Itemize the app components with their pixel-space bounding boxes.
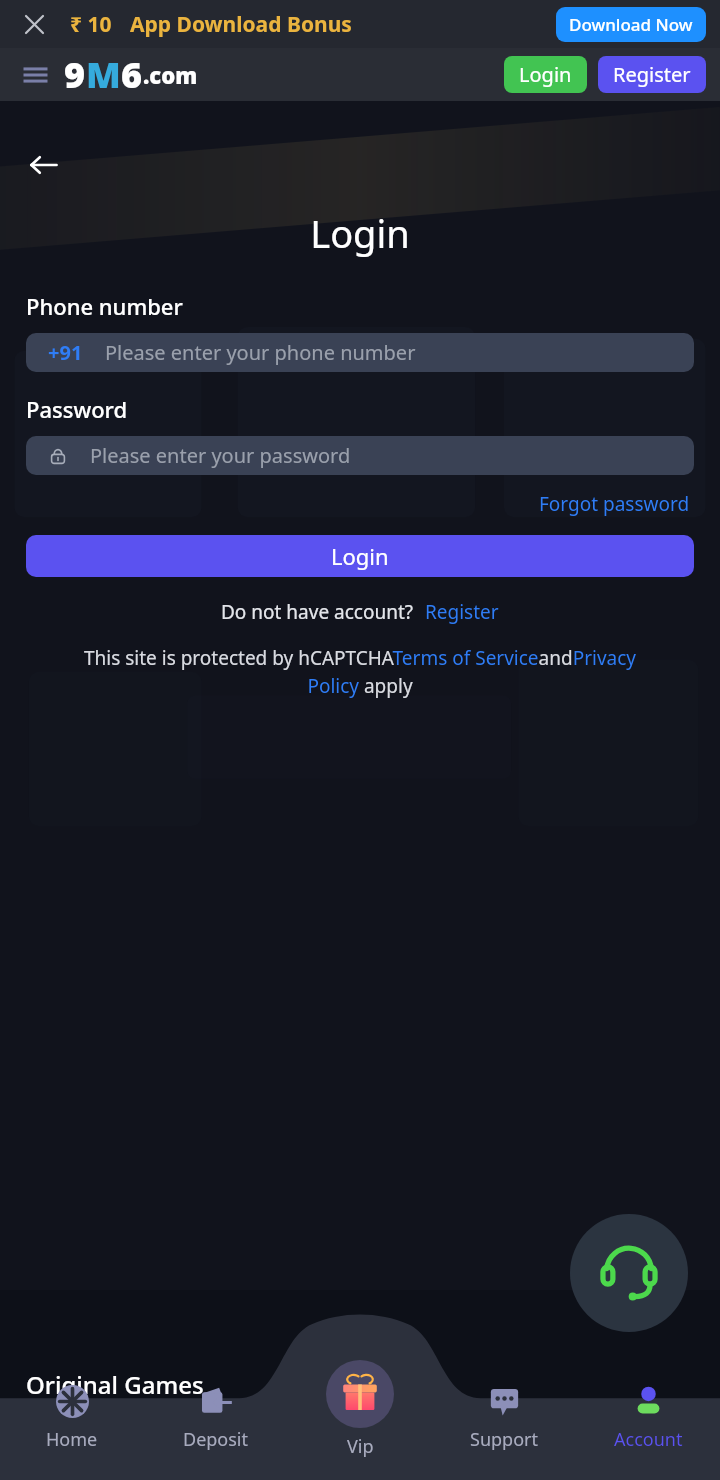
- staticText: About: [360, 1368, 430, 1401]
- staticText: Vip: [347, 1434, 374, 1459]
- staticText: Login: [331, 541, 389, 571]
- staticText: +91: [48, 339, 83, 366]
- staticText: Register: [425, 599, 499, 625]
- button[interactable]: Download Now: [556, 7, 706, 42]
- button[interactable]: Support chat: [570, 1214, 688, 1332]
- staticText: This site is protected by hCAPTCHATerms …: [56, 645, 664, 699]
- button[interactable]: Back: [18, 139, 70, 191]
- staticText: .com: [143, 60, 198, 90]
- button[interactable]: Login: [504, 56, 587, 93]
- staticText: Terms of Service: [360, 1423, 522, 1452]
- staticText: Deposit: [183, 1427, 249, 1452]
- button[interactable]: Register: [425, 599, 499, 625]
- button[interactable]: Home: [0, 1382, 144, 1480]
- staticText: 9: [64, 50, 86, 99]
- button[interactable]: Forgot password: [535, 487, 694, 521]
- staticText: Home: [46, 1427, 98, 1452]
- staticText: 6: [121, 50, 143, 99]
- button[interactable]: Close: [14, 4, 54, 44]
- staticText: M: [86, 50, 121, 99]
- button[interactable]: +91: [26, 333, 694, 372]
- staticText: Login: [519, 61, 572, 88]
- staticText: ₹ 10: [70, 10, 112, 39]
- button[interactable]: Account: [576, 1382, 720, 1480]
- staticText: Register: [613, 61, 691, 88]
- staticText: Support: [470, 1427, 538, 1452]
- staticText: App Download Bonus: [130, 10, 352, 39]
- staticText: Account: [614, 1427, 683, 1452]
- staticText: Phone number: [26, 291, 183, 321]
- staticText: Do not have account?: [221, 599, 414, 625]
- button[interactable]: Register: [598, 56, 706, 93]
- staticText: Login: [0, 207, 720, 259]
- button[interactable]: Please enter your password: [26, 436, 694, 475]
- button[interactable]: Vip: [288, 1382, 432, 1475]
- staticText: In-House: [26, 1423, 117, 1452]
- staticText: Original Games: [26, 1368, 204, 1401]
- button[interactable]: Login: [26, 535, 694, 577]
- staticText: Password: [26, 394, 128, 424]
- staticText: Forgot password: [539, 491, 690, 517]
- button[interactable]: Deposit: [144, 1382, 288, 1480]
- button[interactable]: Support: [432, 1382, 576, 1480]
- staticText: Download Now: [569, 13, 693, 36]
- button[interactable]: Menu: [14, 54, 56, 96]
- staticText: Please enter your password: [90, 442, 351, 469]
- staticText: Please enter your phone number: [105, 339, 416, 366]
